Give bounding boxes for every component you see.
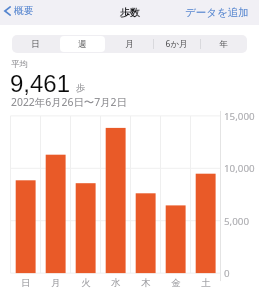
staticText: 6か月 <box>165 38 188 50</box>
staticText: 平均 <box>11 59 28 70</box>
staticText: 5,000 <box>224 215 250 228</box>
button[interactable]: 週 <box>59 35 106 53</box>
staticText: 週 <box>78 39 87 50</box>
staticText: 金 <box>171 277 181 289</box>
staticText: 0 <box>224 267 230 280</box>
staticText: 月 <box>125 39 134 50</box>
button[interactable]: 年 <box>200 35 247 53</box>
staticText: 9,461 <box>10 70 71 97</box>
staticText: 2022年6月26日〜7月2日 <box>11 95 127 109</box>
button[interactable]: 概要 <box>0 2 40 20</box>
staticText: 10,000 <box>224 162 255 175</box>
button[interactable]: 6か月 <box>153 35 200 53</box>
staticText: 年 <box>219 39 228 50</box>
staticText: 水 <box>111 277 121 289</box>
button[interactable]: 日 <box>12 35 59 53</box>
staticText: 月 <box>51 277 61 289</box>
staticText: 15,000 <box>224 110 255 123</box>
button[interactable]: 月 <box>106 35 153 53</box>
staticText: 木 <box>141 277 151 289</box>
staticText: 概要 <box>14 5 34 17</box>
staticText: 日 <box>31 39 40 50</box>
staticText: 火 <box>81 277 91 289</box>
staticText: 土 <box>201 277 211 289</box>
staticText: 日 <box>21 277 31 289</box>
staticText: 歩数 <box>120 6 140 19</box>
staticText: 歩 <box>76 82 86 94</box>
button[interactable]: データを追加 <box>177 2 259 23</box>
